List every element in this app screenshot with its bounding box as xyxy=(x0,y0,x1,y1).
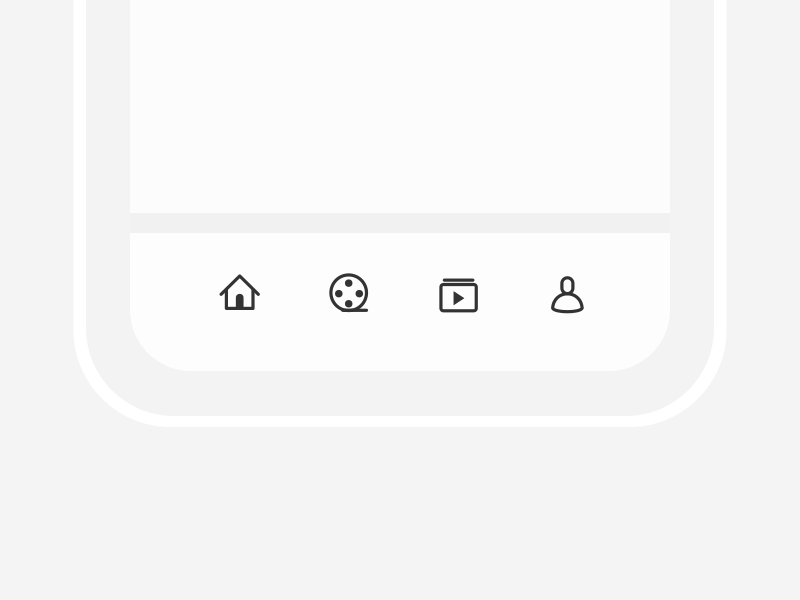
button[interactable]: Videos xyxy=(439,278,478,312)
button[interactable]: Profile xyxy=(551,276,584,313)
button[interactable]: Reels xyxy=(329,274,368,312)
button[interactable]: Home xyxy=(219,274,260,310)
